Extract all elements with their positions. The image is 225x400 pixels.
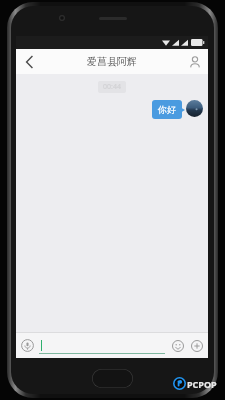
staticText: 爱菖县阿辉 [87,55,137,68]
button[interactable]: More options [188,337,205,354]
staticText: PCPOP [187,378,217,390]
button[interactable]: Contact info [182,49,208,74]
button[interactable]: Avatar [186,100,203,117]
button[interactable] [39,336,165,354]
button[interactable]: Home [92,369,133,388]
button[interactable]: 你好 [152,100,182,119]
staticText: 你好 [158,104,176,115]
button[interactable]: Back [16,49,42,74]
button[interactable]: Emoji [169,337,186,354]
staticText: 00:44 [103,82,121,92]
button[interactable]: Voice message [19,337,36,354]
